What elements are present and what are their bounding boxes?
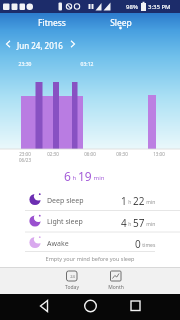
staticText: min [145, 221, 156, 228]
staticText: 19 [78, 168, 92, 184]
staticText: 24 [67, 274, 78, 279]
staticText: 0 [135, 237, 141, 250]
staticText: 06/23 [14, 157, 36, 163]
staticText: 23:30 [14, 61, 36, 68]
staticText: 02:30 [42, 151, 64, 157]
staticText: 4 [121, 216, 127, 229]
staticText: Fitness [30, 17, 74, 29]
staticText: h [127, 199, 133, 206]
staticText: Today [56, 284, 88, 291]
staticText: 23:00 [14, 151, 36, 157]
staticText: 98% [124, 3, 140, 11]
staticText: Sleep [99, 17, 143, 29]
staticText: h [71, 174, 78, 182]
staticText: 57 [133, 216, 145, 229]
staticText: Empty your mind before you sleep [20, 255, 160, 262]
staticText: Deep sleep [47, 196, 107, 206]
staticText: Month [100, 284, 132, 291]
staticText: 1 [121, 194, 127, 207]
staticText: Jun 24, 2016 [17, 40, 63, 51]
staticText: min [92, 174, 105, 182]
staticText: Light sleep [47, 217, 107, 227]
staticText: 06:00 [79, 151, 101, 157]
staticText: 22 [133, 194, 145, 207]
staticText: 6 [64, 168, 71, 184]
staticText: 03:12 [76, 61, 98, 68]
staticText: Awake [47, 239, 107, 249]
staticText: 13:00 [148, 151, 170, 157]
staticText: 09:30 [111, 151, 133, 157]
staticText: times [141, 242, 156, 249]
staticText: min [145, 199, 156, 206]
staticText: 3:35 PM [148, 3, 180, 11]
staticText: h [127, 221, 133, 228]
